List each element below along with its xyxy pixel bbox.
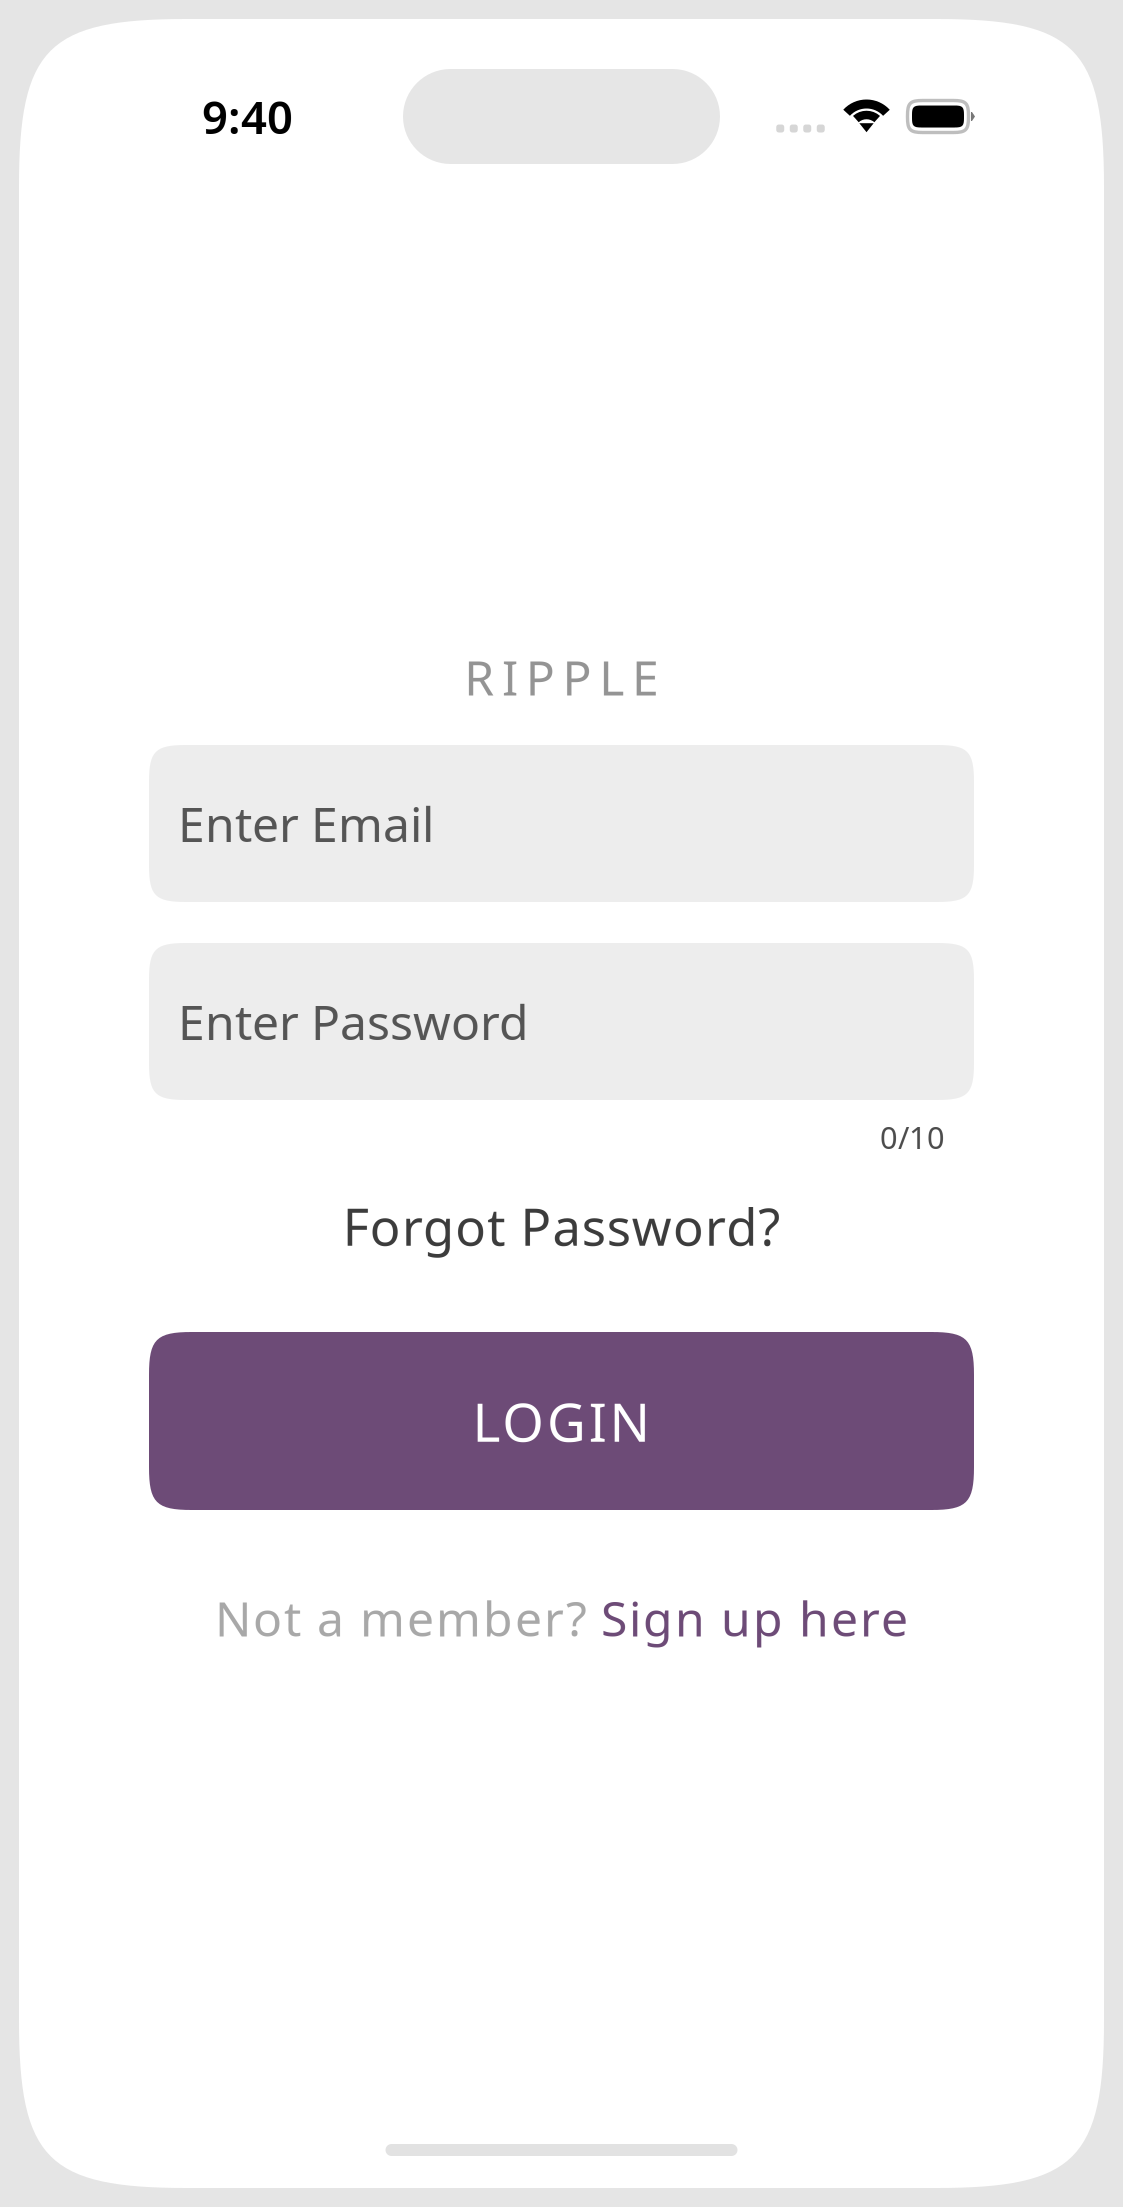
staticText: Enter Email: [178, 792, 434, 855]
staticText: Enter Password: [178, 990, 529, 1053]
staticText: RIPPLE: [464, 645, 659, 709]
staticText: 9:40: [202, 86, 293, 147]
button[interactable]: Enter Email: [149, 745, 974, 902]
staticText: 0/10: [880, 1117, 945, 1157]
button[interactable]: Forgot Password?: [149, 1181, 974, 1267]
button[interactable]: LOGIN: [149, 1332, 974, 1510]
staticText: Forgot Password?: [343, 1192, 780, 1260]
staticText: Not a member?: [215, 1586, 601, 1650]
button[interactable]: Sign up here: [601, 1586, 908, 1650]
staticText: LOGIN: [472, 1386, 651, 1456]
button[interactable]: Enter Password: [149, 943, 974, 1100]
staticText: Sign up here: [601, 1586, 908, 1650]
